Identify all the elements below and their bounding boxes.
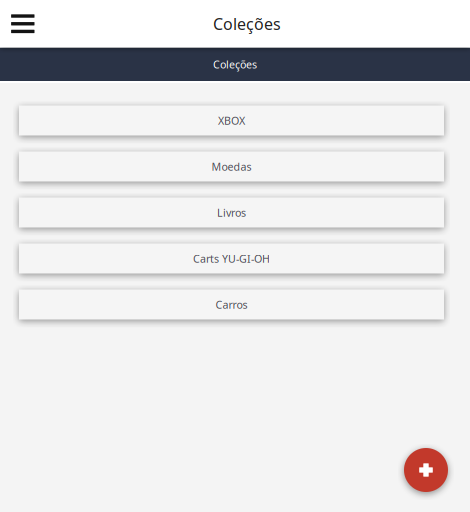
button[interactable]: Carts YU-GI-OH (19, 243, 444, 273)
button[interactable]: Moedas (19, 151, 444, 181)
button[interactable]: Coleções (0, 47, 470, 81)
button[interactable]: Carros (19, 289, 444, 319)
button[interactable]: Livros (19, 197, 444, 227)
button[interactable]: Add collection (404, 448, 448, 492)
staticText: Carts YU-GI-OH (193, 251, 270, 266)
staticText: Livros (217, 205, 246, 220)
button[interactable]: Menu (3, 4, 43, 44)
staticText: Coleções (213, 13, 281, 34)
staticText: Moedas (211, 159, 251, 174)
button[interactable]: XBOX (19, 105, 444, 135)
staticText: Carros (215, 297, 247, 312)
staticText: Coleções (213, 57, 257, 71)
staticText: XBOX (218, 113, 245, 128)
